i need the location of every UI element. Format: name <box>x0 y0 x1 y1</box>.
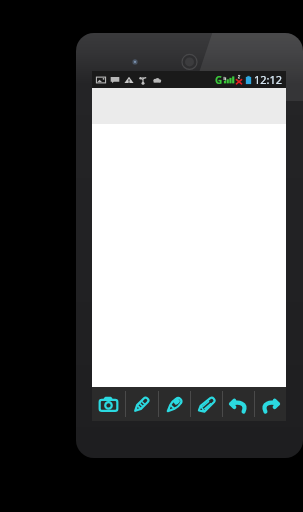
button[interactable]: Highlighter <box>190 387 222 421</box>
staticText: G <box>215 73 223 87</box>
button[interactable]: Undo <box>222 387 254 421</box>
button[interactable]: Pencil <box>125 387 158 421</box>
button[interactable]: Pen <box>158 387 190 421</box>
button[interactable]: Camera <box>92 387 125 421</box>
staticText: 12:12 <box>254 72 283 87</box>
button[interactable]: Redo <box>254 387 286 421</box>
